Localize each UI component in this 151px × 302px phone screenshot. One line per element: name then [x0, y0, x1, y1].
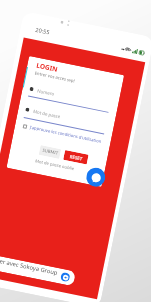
button[interactable]: Discuter avec Sokoya Group — [0, 251, 76, 286]
staticText: J'approuve les conditions d'utilisation — [29, 125, 102, 145]
staticText: Discuter avec Sokoya Group — [0, 254, 58, 277]
staticText: LOGIN — [36, 61, 59, 74]
other: Messenger — [60, 272, 71, 282]
button[interactable]: Chat — [85, 166, 107, 188]
staticText: SUBMIT — [42, 148, 59, 157]
staticText: Mot de passe oublie — [35, 158, 75, 172]
staticText: RESET — [69, 153, 83, 162]
staticText: 20:55 — [35, 26, 51, 36]
staticText: Entrer vos acces svp! — [34, 70, 76, 85]
staticText: Numero — [37, 87, 56, 97]
button[interactable]: RESET — [63, 150, 89, 165]
button[interactable]: SUBMIT — [39, 145, 61, 159]
staticText: Mot de passe — [33, 108, 61, 119]
